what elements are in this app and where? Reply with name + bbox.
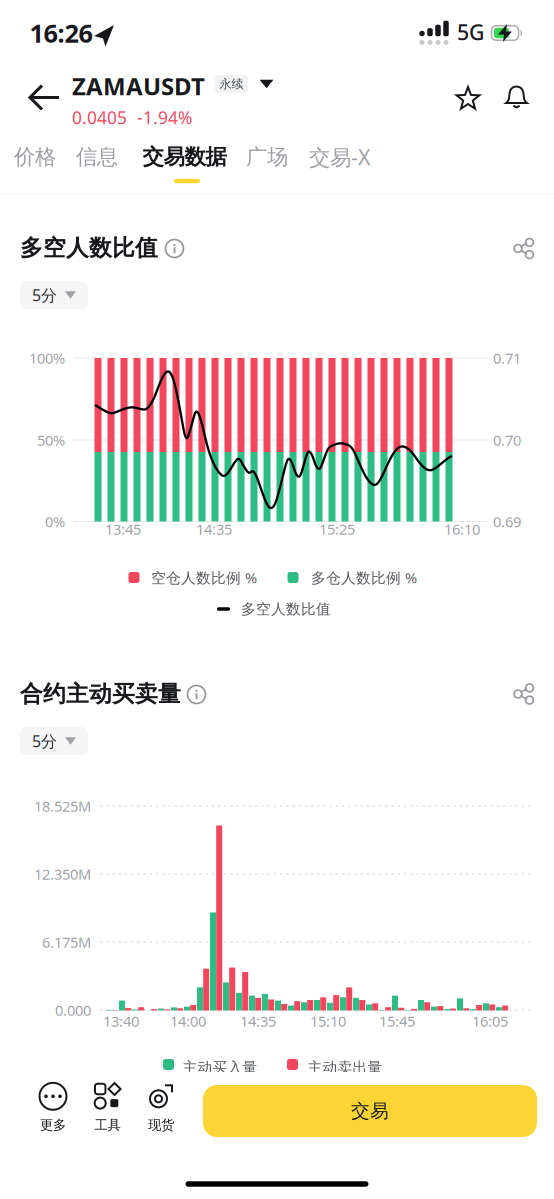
staticText: ZAMAUSDT — [72, 70, 205, 102]
button[interactable]: Share — [514, 238, 534, 258]
staticText: 多空人数比值 — [241, 600, 331, 618]
staticText: 15:10 — [310, 1011, 346, 1031]
staticText: 广场 — [246, 144, 288, 170]
button[interactable]: 价格 — [14, 144, 56, 170]
staticText: 5分 — [32, 284, 57, 306]
staticText: 6.175M — [42, 932, 91, 952]
staticText: 多空人数比值 — [20, 234, 158, 262]
button[interactable]: 交易-X — [309, 143, 371, 171]
staticText: 主动买入量 — [182, 1058, 257, 1076]
staticText: 信息 — [76, 144, 118, 170]
button[interactable]: ZAMAUSDT — [72, 70, 312, 102]
staticText: 13:40 — [103, 1011, 139, 1031]
button[interactable]: 5分 — [20, 281, 88, 309]
button[interactable]: 工具 — [94, 1083, 121, 1133]
staticText: 16:26 — [29, 16, 92, 50]
button[interactable]: 广场 — [246, 144, 288, 170]
button[interactable]: 交易数据 — [142, 144, 226, 170]
staticText: 0.0405 -1.94% — [72, 106, 192, 129]
button[interactable]: Favorite — [456, 86, 480, 110]
staticText: 工具 — [94, 1117, 120, 1133]
button[interactable]: Share — [514, 684, 534, 704]
staticText: 0.000 — [55, 1000, 91, 1020]
staticText: 5分 — [32, 730, 57, 752]
staticText: 0% — [45, 512, 65, 531]
staticText: 50% — [37, 430, 65, 450]
staticText: 16:05 — [472, 1011, 508, 1031]
staticText: 14:00 — [170, 1011, 206, 1031]
button[interactable]: Back — [28, 84, 60, 111]
staticText: 0.70 — [493, 430, 521, 450]
staticText: 永续 — [219, 77, 243, 91]
button[interactable]: 5分 — [20, 727, 88, 755]
staticText: 15:25 — [319, 519, 355, 539]
button[interactable]: 永续 — [215, 75, 248, 93]
staticText: 多仓人数比例 % — [311, 568, 417, 587]
button[interactable]: 现货 — [147, 1083, 174, 1133]
staticText: 18.525M — [34, 796, 91, 816]
button[interactable]: 更多 — [39, 1083, 66, 1133]
staticText: 交易 — [351, 1099, 389, 1122]
staticText: 16:10 — [444, 519, 480, 539]
staticText: 15:45 — [379, 1011, 415, 1031]
staticText: 交易-X — [309, 143, 371, 171]
button[interactable]: Alerts — [505, 85, 528, 109]
button[interactable]: 信息 — [76, 144, 118, 170]
staticText: 合约主动买卖量 — [20, 680, 181, 708]
staticText: 主动卖出量 — [307, 1058, 382, 1076]
staticText: 0.71 — [493, 348, 521, 368]
staticText: 交易数据 — [142, 144, 226, 170]
staticText: 14:35 — [196, 519, 232, 539]
staticText: 0.69 — [493, 512, 521, 531]
staticText: 14:35 — [240, 1011, 276, 1031]
button[interactable]: 交易 — [203, 1085, 537, 1137]
staticText: 空仓人数比例 % — [151, 568, 257, 587]
staticText: 更多 — [40, 1117, 66, 1133]
staticText: 价格 — [14, 144, 56, 170]
staticText: 5G — [457, 18, 485, 46]
staticText: 12.350M — [34, 864, 91, 884]
staticText: 13:45 — [105, 519, 141, 539]
staticText: 现货 — [148, 1117, 174, 1133]
button[interactable]: Switch pair — [259, 80, 273, 88]
staticText: 100% — [29, 348, 65, 368]
